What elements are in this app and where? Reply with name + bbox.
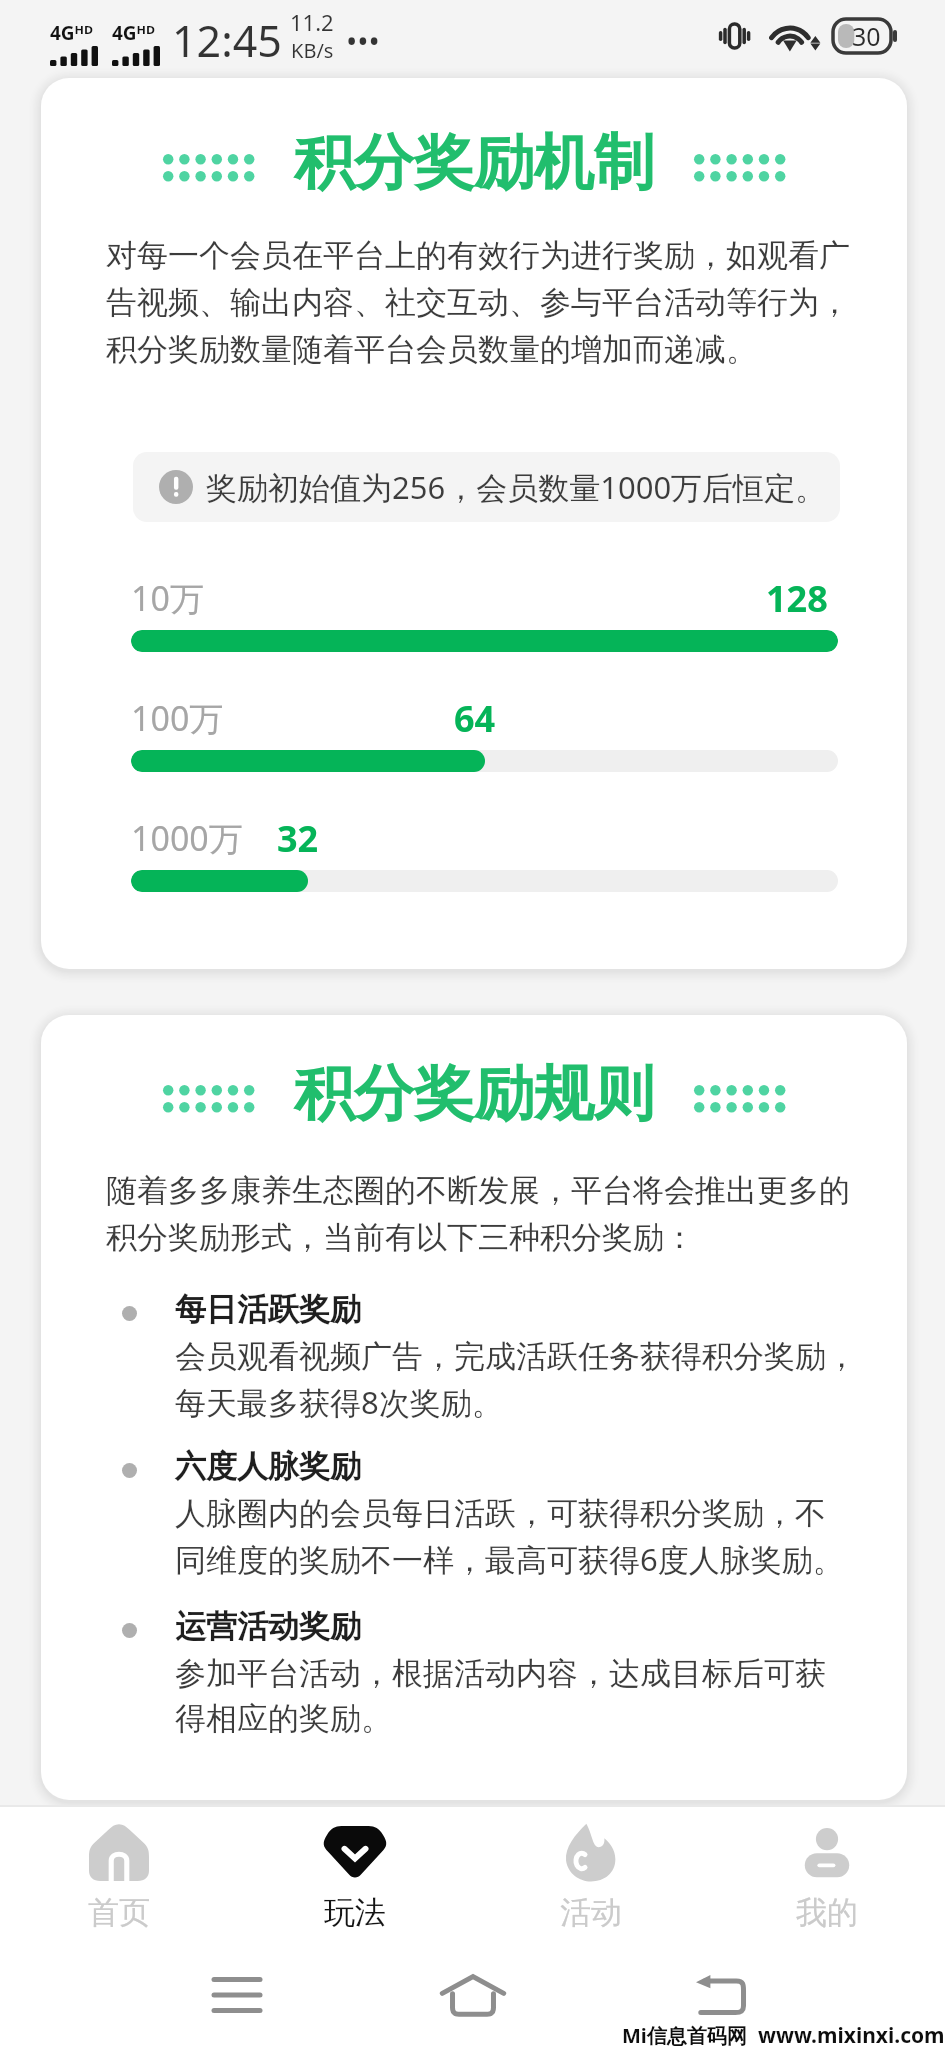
staticText: 人脉圈内的会员每日活跃，可获得积分奖励，不 同维度的奖励不一样，最高可获得6度人…	[175, 1494, 844, 1580]
staticText: 12:45	[172, 11, 282, 70]
button[interactable]: Back	[680, 1955, 760, 2035]
staticText: 活动	[560, 1893, 622, 1932]
staticText: 六度人脉奖励	[175, 1447, 361, 1486]
staticText: 随着多多康养生态圈的不断发展，平台将会推出更多的 积分奖励形式，当前有以下三种积…	[106, 1171, 852, 1257]
staticText: 10万	[131, 575, 204, 621]
button[interactable]: Home	[433, 1955, 513, 2035]
staticText: 对每一个会员在平台上的有效行为进行奖励，如观看广 告视频、输出内容、社交互动、参…	[106, 236, 852, 369]
staticText: •••	[346, 21, 380, 62]
staticText: 64	[454, 694, 496, 743]
staticText: 玩法	[324, 1893, 386, 1932]
staticText: www.mixinxi.com	[758, 2021, 945, 2048]
staticText: Mi信息首码网	[622, 2022, 747, 2048]
staticText: 奖励初始值为256，会员数量1000万后恒定。	[206, 466, 827, 508]
button[interactable]: Recent apps	[197, 1955, 277, 2035]
staticText: KB/s	[291, 37, 334, 64]
staticText: 4Gᴴᴰ	[50, 20, 94, 46]
staticText: 积分奖励机制	[294, 125, 654, 201]
staticText: 30	[852, 19, 881, 53]
button[interactable]: 我的	[709, 1805, 945, 1950]
staticText: 运营活动奖励	[175, 1607, 361, 1646]
button[interactable]: 首页	[0, 1805, 237, 1950]
staticText: 32	[277, 814, 319, 863]
staticText: 首页	[88, 1893, 150, 1932]
staticText: 参加平台活动，根据活动内容，达成目标后可获 得相应的奖励。	[175, 1654, 826, 1739]
button[interactable]: 活动	[473, 1805, 709, 1950]
staticText: 1000万	[131, 815, 243, 861]
staticText: 每日活跃奖励	[175, 1290, 361, 1329]
staticText: 100万	[131, 695, 224, 741]
staticText: 11.2	[290, 7, 334, 37]
button[interactable]: 玩法	[237, 1805, 473, 1950]
staticText: 会员观看视频广告，完成活跃任务获得积分奖励， 每天最多获得8次奖励。	[175, 1337, 857, 1423]
staticText: 我的	[796, 1893, 858, 1932]
staticText: 128	[766, 574, 828, 623]
staticText: 积分奖励规则	[294, 1056, 654, 1132]
staticText: 4Gᴴᴰ	[112, 20, 156, 46]
